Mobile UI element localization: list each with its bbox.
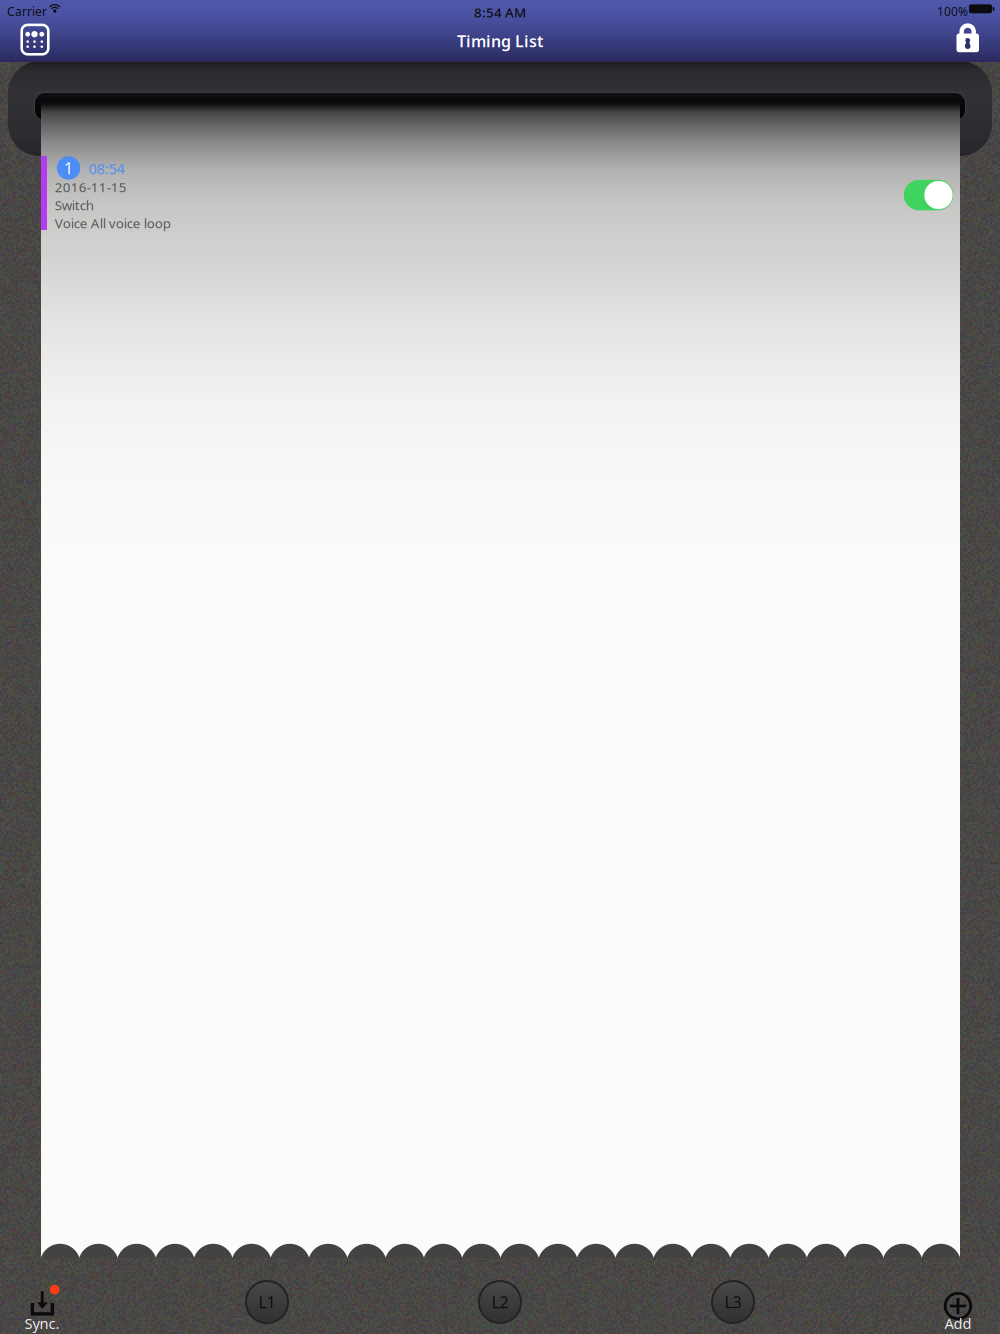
button[interactable]: L1	[241, 1276, 293, 1328]
staticText: L3	[724, 1291, 741, 1313]
staticText: 8:54 AM	[474, 3, 526, 21]
staticText: Voice All voice loop	[55, 214, 171, 232]
button[interactable]: Add	[916, 1282, 1000, 1334]
staticText: 08:54	[88, 159, 124, 178]
staticText: 1	[64, 157, 73, 178]
staticText: Carrier	[7, 3, 47, 19]
staticText: L1	[258, 1291, 275, 1313]
button[interactable]: Lock	[948, 18, 987, 57]
staticText: Switch	[55, 196, 94, 214]
staticText: 2016-11-15	[55, 178, 127, 196]
button[interactable]: L3	[707, 1276, 759, 1328]
staticText: Add	[944, 1313, 971, 1333]
staticText: L2	[491, 1291, 508, 1313]
button[interactable]: Sync.	[0, 1282, 84, 1334]
button[interactable]: 1	[41, 156, 960, 236]
staticText: Timing List	[457, 30, 543, 52]
button[interactable]: Enabled	[904, 180, 953, 210]
staticText: Sync.	[24, 1313, 59, 1333]
button[interactable]: L2	[474, 1276, 526, 1328]
button[interactable]: Keypad	[14, 20, 56, 59]
staticText: 100%	[937, 3, 968, 19]
